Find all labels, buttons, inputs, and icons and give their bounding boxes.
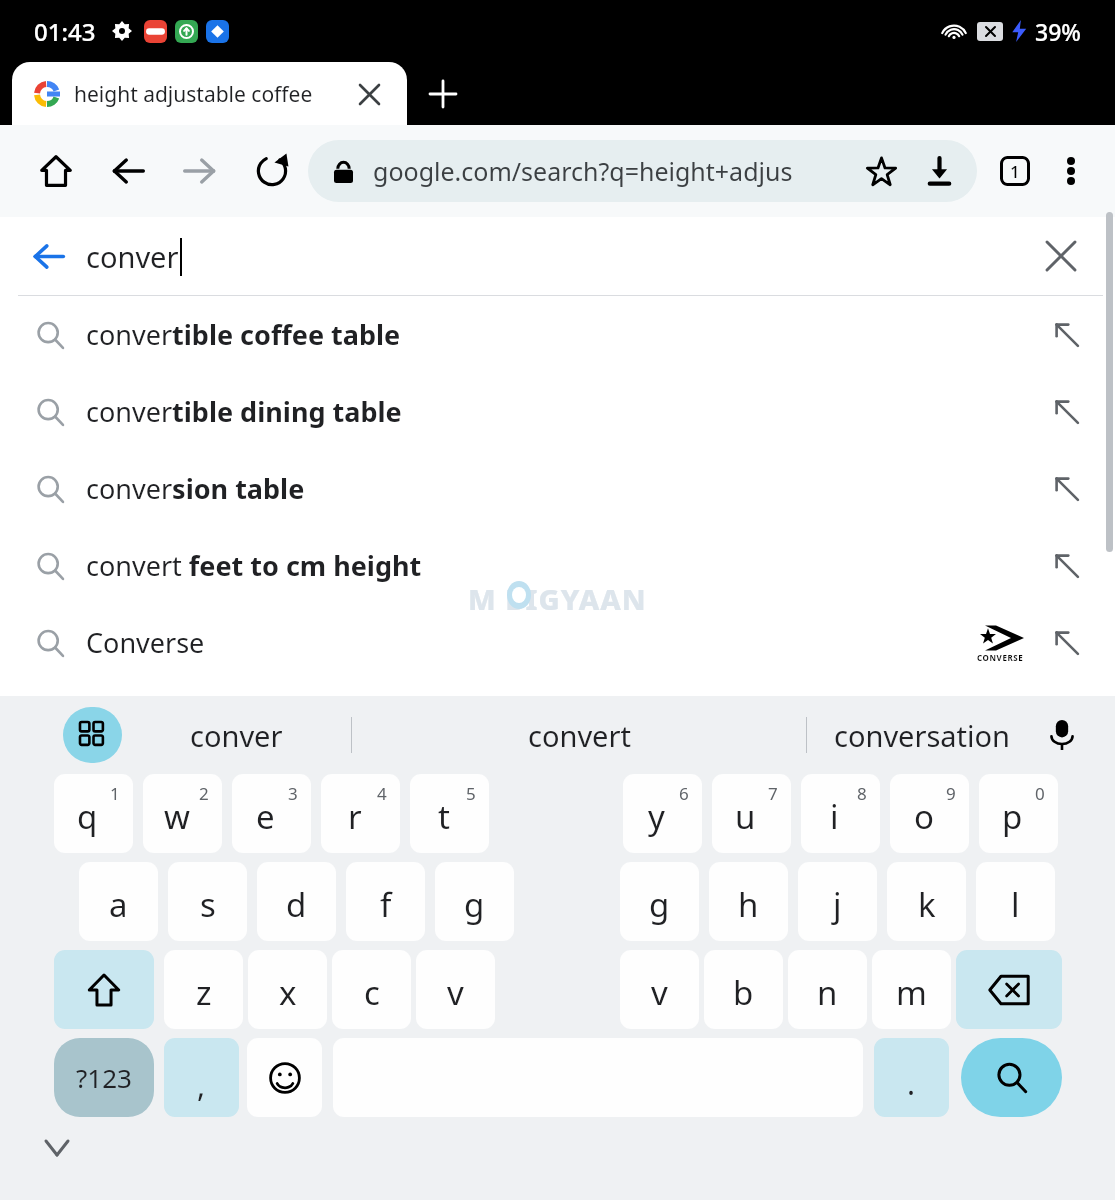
staticText: d bbox=[286, 882, 307, 927]
staticText: 3 bbox=[288, 782, 298, 805]
staticText: 39% bbox=[1035, 16, 1081, 47]
staticText: f bbox=[380, 882, 392, 927]
button[interactable]: Close tab bbox=[349, 74, 389, 114]
button[interactable]: Insert suggestion bbox=[1043, 311, 1091, 359]
button[interactable]: Insert suggestion bbox=[1043, 388, 1091, 436]
button[interactable]: conver bbox=[122, 716, 351, 755]
button[interactable]: google.com/search?q=height+adjus bbox=[308, 140, 977, 202]
staticText: m bbox=[896, 970, 927, 1015]
button[interactable]: conversion table bbox=[0, 450, 1115, 527]
button[interactable]: Converse bbox=[0, 604, 1115, 681]
staticText: height adjustable tabl bbox=[74, 79, 290, 108]
staticText: , bbox=[197, 1065, 206, 1106]
button[interactable]: u bbox=[712, 774, 791, 853]
staticText: 9 bbox=[946, 782, 956, 805]
button[interactable]: convertible coffee table bbox=[0, 296, 1115, 373]
staticText: convert bbox=[528, 716, 631, 755]
staticText: ?123 bbox=[76, 1060, 132, 1095]
staticText: 2 bbox=[199, 782, 209, 805]
button[interactable]: New tab bbox=[415, 62, 471, 125]
button[interactable]: Period bbox=[874, 1038, 949, 1117]
button[interactable]: h bbox=[709, 862, 788, 941]
button[interactable]: r bbox=[321, 774, 400, 853]
button[interactable]: Insert suggestion bbox=[1043, 465, 1091, 513]
staticText: z bbox=[196, 970, 212, 1015]
button[interactable]: c bbox=[332, 950, 411, 1029]
staticText: s bbox=[200, 882, 216, 927]
button[interactable]: height adjustable tabl bbox=[12, 62, 407, 125]
staticText: i bbox=[830, 794, 839, 839]
staticText: 8 bbox=[857, 782, 867, 805]
staticText: convert feet to cm height bbox=[86, 547, 422, 584]
button[interactable]: g bbox=[435, 862, 514, 941]
button[interactable]: g bbox=[620, 862, 699, 941]
staticText: g bbox=[649, 882, 670, 927]
button[interactable]: Search bbox=[961, 1038, 1062, 1117]
button[interactable]: e bbox=[232, 774, 311, 853]
button[interactable]: More options bbox=[1047, 147, 1095, 195]
button[interactable]: w bbox=[143, 774, 222, 853]
button[interactable]: z bbox=[164, 950, 243, 1029]
staticText: 4 bbox=[377, 782, 387, 805]
staticText: k bbox=[918, 882, 936, 927]
button[interactable]: j bbox=[798, 862, 877, 941]
button[interactable]: Tabs bbox=[991, 147, 1039, 195]
button[interactable]: v bbox=[416, 950, 495, 1029]
button[interactable]: Insert suggestion bbox=[1043, 542, 1091, 590]
staticText: 5 bbox=[466, 782, 476, 805]
button[interactable]: Reload bbox=[236, 135, 308, 207]
button[interactable]: q bbox=[54, 774, 133, 853]
button[interactable]: conversation bbox=[807, 716, 1037, 755]
button[interactable]: ?123 bbox=[54, 1038, 154, 1117]
button[interactable]: Forward bbox=[164, 135, 236, 207]
button[interactable]: Back bbox=[92, 135, 164, 207]
button[interactable]: Toolbar bbox=[63, 707, 122, 763]
staticText: v bbox=[651, 970, 668, 1015]
button[interactable]: n bbox=[788, 950, 867, 1029]
button[interactable]: a bbox=[79, 862, 158, 941]
button[interactable]: x bbox=[248, 950, 327, 1029]
staticText: . bbox=[907, 1063, 916, 1104]
staticText: 7 bbox=[768, 782, 778, 805]
button[interactable]: d bbox=[257, 862, 336, 941]
staticText: CONVERSE bbox=[977, 652, 1024, 663]
button[interactable]: Comma bbox=[164, 1038, 239, 1117]
button[interactable]: Insert suggestion bbox=[1043, 619, 1091, 667]
staticText: q bbox=[77, 794, 98, 839]
button[interactable]: Bookmark bbox=[861, 151, 901, 191]
button[interactable]: Clear bbox=[1033, 228, 1089, 284]
button[interactable]: y bbox=[623, 774, 702, 853]
button[interactable]: o bbox=[890, 774, 969, 853]
staticText: M BIGYAAN bbox=[468, 579, 647, 618]
button[interactable]: convert feet to cm height bbox=[0, 527, 1115, 604]
button[interactable]: Shift bbox=[54, 950, 154, 1029]
button[interactable]: p bbox=[979, 774, 1058, 853]
button[interactable]: l bbox=[976, 862, 1055, 941]
button[interactable]: v bbox=[620, 950, 699, 1029]
button[interactable]: Back bbox=[18, 226, 78, 286]
staticText: c bbox=[364, 970, 380, 1015]
staticText: google.com/search?q=height+adjus bbox=[373, 154, 793, 188]
button[interactable]: Hide keyboard bbox=[36, 1127, 78, 1169]
staticText: u bbox=[735, 794, 756, 839]
staticText: b bbox=[733, 970, 754, 1015]
button[interactable]: i bbox=[801, 774, 880, 853]
button[interactable]: Download bbox=[919, 151, 959, 191]
staticText: 1 bbox=[110, 782, 120, 805]
button[interactable]: b bbox=[704, 950, 783, 1029]
staticText: 1 bbox=[1010, 160, 1020, 183]
button[interactable]: Backspace bbox=[956, 950, 1062, 1029]
button[interactable]: convertible dining table bbox=[0, 373, 1115, 450]
staticText: conver bbox=[86, 237, 179, 276]
button[interactable]: convert bbox=[352, 716, 806, 755]
staticText: o bbox=[914, 794, 934, 839]
button[interactable]: m bbox=[872, 950, 951, 1029]
button[interactable]: f bbox=[346, 862, 425, 941]
button[interactable]: Voice input bbox=[1037, 710, 1087, 760]
button[interactable]: Home bbox=[20, 135, 92, 207]
button[interactable]: k bbox=[887, 862, 966, 941]
button[interactable]: s bbox=[168, 862, 247, 941]
button[interactable]: Emoji bbox=[247, 1038, 322, 1117]
button[interactable]: t bbox=[410, 774, 489, 853]
